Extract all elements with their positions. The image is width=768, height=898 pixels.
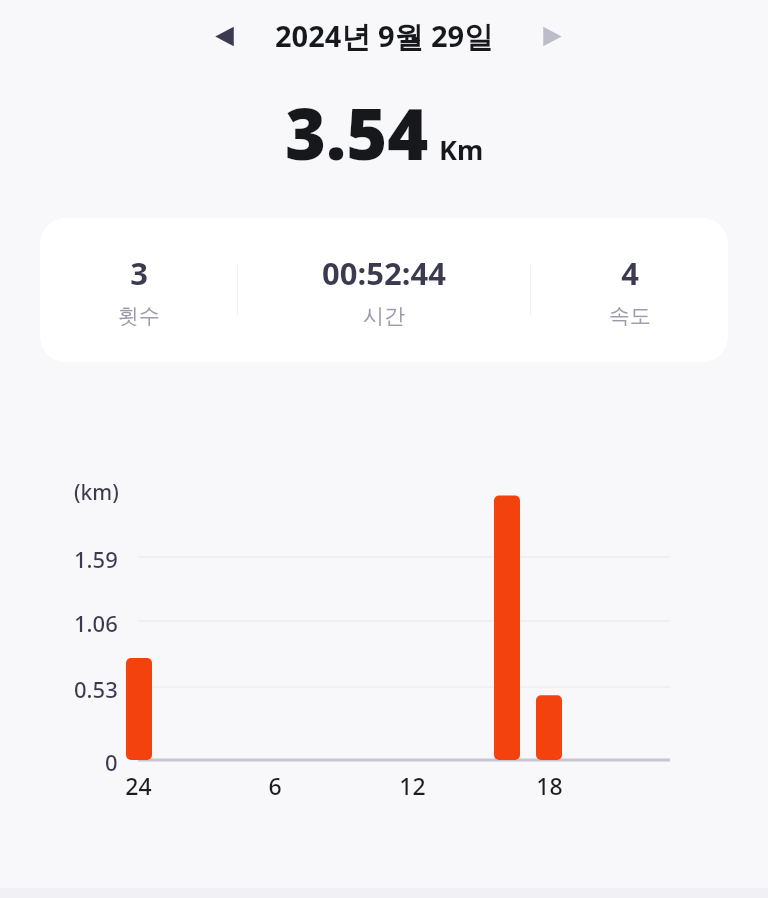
staticText: 12 (399, 770, 426, 801)
button[interactable]: 3 (40, 252, 237, 329)
staticText: 6 (268, 770, 282, 801)
staticText: 횟수 (118, 303, 160, 329)
button[interactable]: 00:52:44 (238, 252, 530, 329)
staticText: 1.59 (74, 544, 118, 574)
staticText: 18 (536, 770, 563, 801)
staticText: (km) (74, 478, 119, 507)
staticText: 2024년 9월 29일 (275, 16, 494, 56)
button[interactable]: Next day (524, 8, 580, 64)
staticText: 3.54 (285, 85, 429, 180)
staticText: 0 (105, 747, 118, 777)
staticText: 속도 (609, 303, 651, 329)
staticText: 00:52:44 (322, 252, 446, 294)
staticText: 24 (125, 770, 152, 801)
staticText: 3 (130, 252, 148, 294)
staticText: Km (439, 131, 484, 168)
staticText: 4 (621, 252, 639, 294)
button[interactable]: Previous day (196, 8, 252, 64)
staticText: 시간 (363, 303, 405, 329)
button[interactable]: 3 (40, 218, 728, 362)
button[interactable]: 4 (531, 252, 728, 329)
staticText: 1.06 (74, 608, 118, 638)
staticText: 0.53 (74, 674, 118, 704)
